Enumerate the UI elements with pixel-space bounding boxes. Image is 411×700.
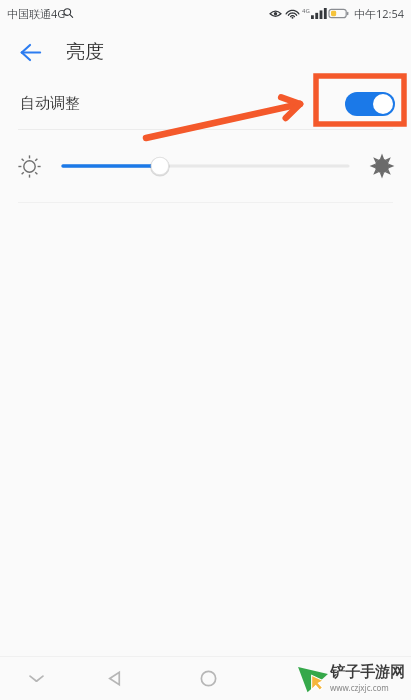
button[interactable]: High brightness [365, 149, 399, 183]
button[interactable]: Home [188, 658, 228, 698]
staticText: 4G [302, 7, 310, 15]
button[interactable] [63, 153, 348, 179]
button[interactable]: Hide [16, 658, 56, 698]
button[interactable]: Low brightness [14, 151, 44, 181]
staticText: www.czjxjc.com [330, 682, 389, 693]
staticText: 中午12:54 [354, 6, 405, 21]
staticText: 中国联通4G [7, 6, 66, 21]
staticText: 自动调整 [20, 94, 80, 113]
button[interactable]: Back [94, 658, 134, 698]
staticText: 铲子手游网 [330, 663, 405, 682]
button[interactable]: Auto brightness toggle [345, 92, 395, 116]
staticText: 亮度 [66, 40, 104, 64]
button[interactable]: 自动调整 [0, 78, 411, 129]
button[interactable]: Back [8, 30, 52, 74]
